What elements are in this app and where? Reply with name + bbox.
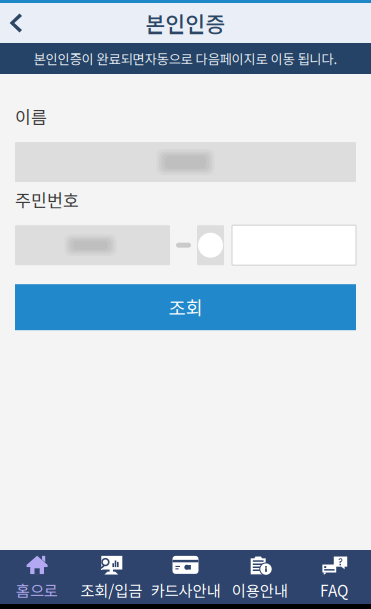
button[interactable]: 조회/입금 bbox=[74, 546, 148, 608]
staticText: 이름 bbox=[15, 104, 47, 129]
staticText: 조회/입금 bbox=[80, 579, 142, 601]
button[interactable]: FAQ bbox=[297, 546, 371, 608]
staticText: 홈으로 bbox=[16, 579, 58, 601]
button[interactable]: Back bbox=[0, 4, 36, 42]
staticText: 본인인증 bbox=[145, 8, 225, 38]
staticText: 본인인증이 완료되면자동으로 다음페이지로 이동 됩니다. bbox=[33, 49, 337, 68]
staticText: FAQ bbox=[320, 579, 348, 601]
button[interactable]: 이용안내 bbox=[223, 546, 297, 608]
staticText: 카드사안내 bbox=[150, 579, 220, 601]
staticText: 주민번호 bbox=[15, 187, 79, 212]
staticText: 이용안내 bbox=[232, 579, 288, 601]
button[interactable]: 카드사안내 bbox=[148, 546, 223, 608]
staticText: 조회 bbox=[168, 294, 202, 321]
button[interactable]: 홈으로 bbox=[0, 546, 74, 608]
button[interactable]: 조회 bbox=[15, 284, 356, 330]
